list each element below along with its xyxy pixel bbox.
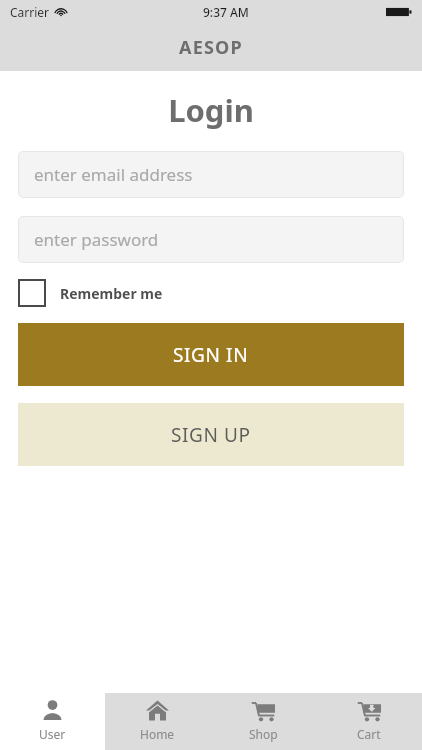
staticText: enter email address <box>34 163 193 186</box>
button[interactable]: SIGN IN <box>18 323 404 386</box>
button[interactable]: SIGN UP <box>18 403 404 466</box>
button[interactable]: User <box>0 690 105 750</box>
button[interactable]: Remember me <box>18 279 163 307</box>
staticText: SIGN IN <box>173 342 249 368</box>
staticText: SIGN UP <box>171 422 251 448</box>
staticText: Carrier <box>10 4 50 20</box>
staticText: AESOP <box>179 35 243 60</box>
staticText: Shop <box>249 726 278 742</box>
staticText: Home <box>140 726 175 742</box>
button[interactable]: Home <box>105 690 210 750</box>
staticText: User <box>39 726 66 742</box>
staticText: Cart <box>357 726 381 742</box>
button[interactable]: Shop <box>210 690 316 750</box>
button[interactable]: Cart <box>316 690 422 750</box>
button[interactable]: enter password <box>18 216 404 263</box>
staticText: 9:37 AM <box>203 4 249 20</box>
staticText: Login <box>0 89 422 131</box>
staticText: enter password <box>34 228 159 251</box>
staticText: Remember me <box>60 284 163 303</box>
button[interactable]: enter email address <box>18 151 404 198</box>
